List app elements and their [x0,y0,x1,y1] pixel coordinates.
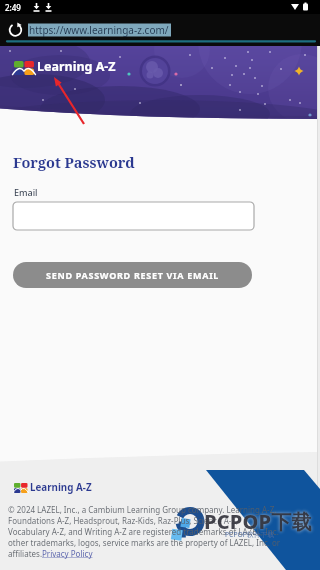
staticText: Vocabulary A-Z, and Writing A-Z are regi… [8,526,279,537]
staticText: SEND PASSWORD RESET VIA EMAIL [46,269,220,281]
button[interactable]: Learning A-Z [14,481,96,494]
staticText: other trademarks, logos, service marks a… [8,537,281,548]
button[interactable]: https://www.learninga-z.com/ [26,20,312,40]
staticText: Learning A-Z [30,481,92,494]
button[interactable]: Privacy Policy [42,548,93,559]
staticText: 2:49 [5,2,21,13]
staticText: PCPOP软件下载 [225,530,275,539]
staticText: PCPOP下载 [204,508,312,535]
staticText: Privacy Policy [42,548,93,559]
staticText: affiliates. [8,548,43,559]
button[interactable] [13,202,254,230]
button[interactable] [8,22,24,38]
staticText: Email [14,186,38,198]
staticText: © 2024 LAZEL, Inc., a Cambium Learning G… [8,504,277,515]
staticText: https://www.learninga-z.com/ [29,23,169,37]
staticText: Forgot Password [13,152,135,172]
staticText: Learning A-Z [37,58,116,75]
staticText: Foundations A-Z, Headsprout, Raz-Kids, R… [8,515,239,526]
button[interactable]: Learning A-Z [14,58,114,77]
button[interactable]: SEND PASSWORD RESET VIA EMAIL [13,262,252,288]
